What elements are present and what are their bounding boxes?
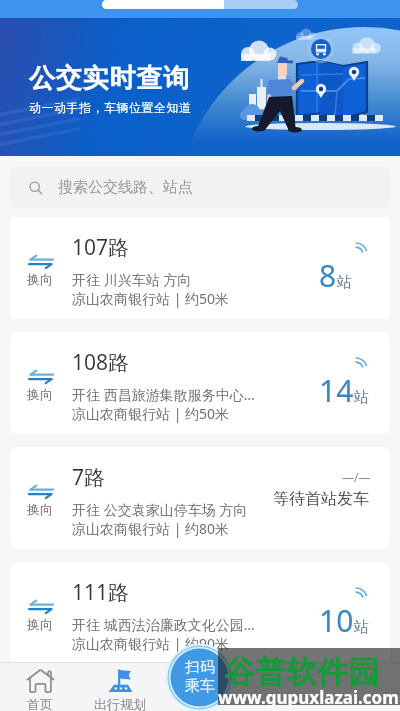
button[interactable]: 换向: [10, 332, 390, 434]
staticText: 8: [319, 255, 337, 296]
staticText: 凉山农商银行站 | 约50米: [72, 404, 230, 423]
staticText: 搜索公交线路、站点: [58, 178, 193, 197]
staticText: 换向: [27, 386, 53, 402]
staticText: 站: [337, 273, 352, 292]
button[interactable]: 换向: [10, 217, 390, 319]
staticText: 谷普软件园: [224, 653, 379, 692]
staticText: —/—: [342, 469, 371, 485]
staticText: 凉山农商银行站 | 约90米: [72, 634, 230, 653]
button[interactable]: 扫码乘车: [165, 643, 234, 711]
staticText: 站: [354, 618, 369, 637]
staticText: 10: [319, 600, 354, 641]
staticText: 乘车: [185, 677, 215, 696]
staticText: 107路: [72, 233, 130, 262]
staticText: 出行规划: [94, 696, 146, 711]
staticText: 7路: [72, 463, 106, 492]
staticText: 扫码: [185, 658, 215, 677]
staticText: www.gupuxlazai.com: [218, 686, 399, 709]
staticText: 站: [354, 388, 369, 407]
button[interactable]: 换向: [10, 447, 390, 549]
staticText: 开往 川兴车站 方向: [72, 270, 192, 289]
staticText: 首页: [27, 696, 53, 711]
staticText: 等待首站发车: [273, 489, 369, 509]
staticText: 动一动手指，车辆位置全知道: [29, 100, 192, 115]
staticText: 换向: [27, 501, 53, 517]
staticText: 换向: [27, 271, 53, 287]
staticText: 换向: [27, 616, 53, 632]
staticText: 公交实时查询: [29, 62, 190, 95]
staticText: 111路: [72, 578, 130, 607]
staticText: 开往 公交袁家山停车场 方向: [72, 500, 248, 519]
staticText: 108路: [72, 348, 130, 377]
button[interactable]: 出行规划: [80, 662, 160, 711]
button[interactable]: 搜索公交线路、站点: [10, 167, 390, 208]
button[interactable]: 换向: [10, 562, 390, 664]
staticText: 开往 西昌旅游集散服务中心…: [72, 385, 255, 404]
staticText: 凉山农商银行站 | 约80米: [72, 519, 230, 538]
staticText: 14: [319, 370, 354, 411]
staticText: 开往 城西法治廉政文化公园…: [72, 615, 255, 634]
button[interactable]: 首页: [0, 662, 80, 711]
staticText: 凉山农商银行站 | 约50米: [72, 289, 230, 308]
